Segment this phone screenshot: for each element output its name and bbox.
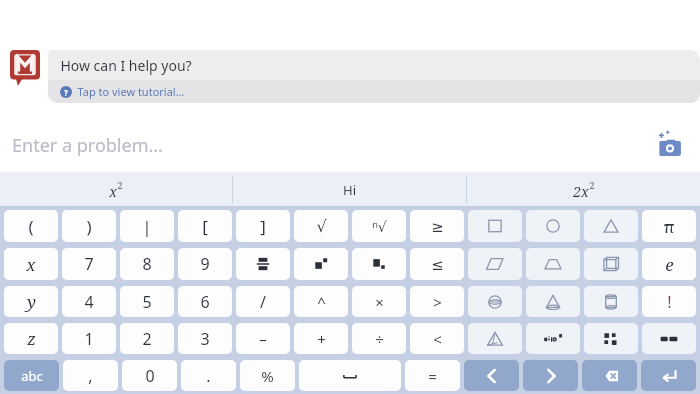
button[interactable]: 2 [120,323,174,354]
button[interactable]: chevl [464,360,519,391]
staticText: Enter a problem... [12,133,163,158]
button[interactable]: 0 [122,360,177,391]
button[interactable]: 9 [178,248,232,280]
staticText: e [665,253,674,276]
button[interactable]: 4 [62,286,116,317]
button[interactable]: 2x [467,172,700,207]
button[interactable]: √ [294,210,348,242]
button[interactable]: sci [526,323,580,354]
button[interactable]: | [120,210,174,242]
button[interactable]: y [4,286,58,317]
staticText: 1 [84,328,94,350]
button[interactable]: vector [642,323,696,354]
button[interactable]: ? [60,84,185,99]
button[interactable]: 1 [62,323,116,354]
button[interactable]: 8 [120,248,174,280]
button[interactable]: x [4,248,58,280]
button[interactable]: cone [526,286,580,317]
button[interactable]: chevr [523,360,578,391]
button[interactable]: circle [526,210,580,242]
staticText: 5 [142,291,152,313]
staticText: 0 [145,365,155,387]
button[interactable]: 7 [62,248,116,280]
button[interactable]: ( [4,210,58,242]
button[interactable]: parallelogram [468,248,522,280]
staticText: ≥ [431,218,444,235]
button[interactable]: ÷ [352,323,406,354]
button[interactable]: How can I help you? [48,50,700,103]
staticText: x [26,253,36,276]
button[interactable]: 3 [178,323,232,354]
button[interactable]: . [181,360,236,391]
button[interactable]: 6 [178,286,232,317]
staticText: Tap to view tutorial... [77,84,185,99]
button[interactable]: ] [236,210,290,242]
staticText: 4 [84,291,94,313]
staticText: . [206,365,211,387]
button[interactable]: ≤ [410,248,464,280]
button[interactable]: z [4,323,58,354]
button[interactable]: trapezoid [526,248,580,280]
button[interactable]: e [642,248,696,280]
button[interactable]: fraction [236,248,290,280]
button[interactable]: power [294,248,348,280]
button[interactable]: backspace [582,360,637,391]
button[interactable]: ^ [294,286,348,317]
staticText: | [142,215,152,238]
staticText: ÷ [375,329,384,349]
button[interactable]: Hi [233,172,466,207]
button[interactable]: triangle [584,210,638,242]
button[interactable]: matrix [584,323,638,354]
staticText: 8 [142,253,152,275]
staticText: [ [202,215,208,238]
staticText: % [261,366,274,386]
button[interactable]: = [405,360,460,391]
button[interactable]: × [352,286,406,317]
button[interactable]: square [468,210,522,242]
staticText: 3 [200,328,210,350]
button[interactable]: + [294,323,348,354]
button[interactable]: % [240,360,295,391]
staticText: < [433,329,442,349]
staticText: × [375,292,384,312]
button[interactable]: ≥ [410,210,464,242]
staticText: 9 [200,253,210,275]
button[interactable]: – [236,323,290,354]
staticText: ] [260,215,266,238]
button[interactable]: cylinder [584,286,638,317]
button[interactable]: cube [584,248,638,280]
staticText: √ [316,217,327,236]
staticText: 7 [84,253,94,275]
button[interactable]: subscript [352,248,406,280]
button[interactable]: abc [4,360,59,391]
button[interactable]: < [410,323,464,354]
staticText: z [27,327,36,350]
staticText: π [663,215,675,238]
button[interactable]: space [299,360,401,391]
staticText: / [260,291,266,313]
button[interactable]: 5 [120,286,174,317]
button[interactable]: x [0,172,232,207]
button[interactable]: , [63,360,118,391]
staticText: abc [21,367,43,385]
button[interactable]: ! [642,286,696,317]
staticText: + [317,329,326,349]
staticText: ? [64,87,68,98]
staticText: ) [86,215,92,238]
button[interactable]: ) [62,210,116,242]
staticText: = [428,366,437,386]
staticText: ≤ [431,256,444,273]
staticText: ⁿ√ [372,217,387,236]
button[interactable]: / [236,286,290,317]
staticText: How can I help you? [60,56,192,75]
staticText: > [433,292,442,312]
button[interactable]: pyramid [468,323,522,354]
staticText: ^ [317,292,326,312]
button[interactable]: ⁿ√ [352,210,406,242]
button[interactable]: [ [178,210,232,242]
button[interactable]: sphere [468,286,522,317]
button[interactable]: enter [641,360,696,391]
button[interactable]: Scan problem with camera [653,128,687,162]
button[interactable]: > [410,286,464,317]
button[interactable]: π [642,210,696,242]
